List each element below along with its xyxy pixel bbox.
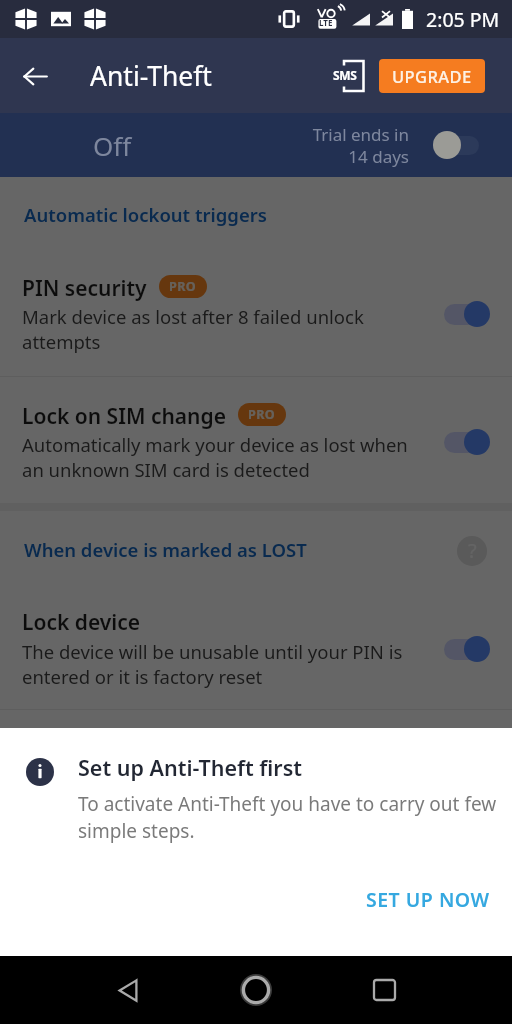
button[interactable]: PIN security: [0, 254, 512, 368]
staticText: PRO: [169, 278, 197, 295]
staticText: Lock on SIM change: [22, 402, 226, 431]
button[interactable]: SET UP NOW: [344, 875, 512, 924]
button[interactable]: Toggle: [444, 634, 490, 664]
button[interactable]: Lock on SIM change: [0, 382, 512, 496]
button[interactable]: Home: [232, 966, 280, 1014]
button[interactable]: Toggle: [444, 299, 490, 329]
staticText: Set up Anti-Theft first: [78, 753, 303, 782]
staticText: Anti-Theft: [90, 58, 212, 94]
staticText: Off: [93, 128, 132, 163]
button[interactable]: Toggle: [444, 427, 490, 457]
button[interactable]: SMS: [327, 53, 373, 99]
staticText: LTE: [319, 17, 333, 28]
staticText: To activate Anti-Theft you have to carry…: [78, 791, 502, 844]
button[interactable]: Lock device: [0, 588, 512, 703]
button[interactable]: Help: [457, 536, 487, 566]
staticText: Automatic lockout triggers: [24, 202, 267, 227]
button[interactable]: Enable Anti-Theft: [433, 130, 479, 160]
staticText: PIN security: [22, 274, 147, 303]
staticText: Lock device: [22, 608, 141, 637]
staticText: 2:05 PM: [426, 6, 500, 33]
staticText: Trial ends in 14 days: [312, 123, 409, 168]
staticText: Automatically mark your device as lost w…: [22, 432, 418, 482]
staticText: ?: [468, 537, 477, 564]
staticText: SET UP NOW: [366, 886, 490, 913]
button[interactable]: Recents: [360, 966, 408, 1014]
button[interactable]: Back: [104, 966, 152, 1014]
staticText: SMS: [333, 67, 357, 83]
staticText: PRO: [248, 406, 276, 423]
button[interactable]: Back: [12, 53, 58, 99]
staticText: The device will be unusable until your P…: [22, 639, 418, 689]
staticText: UPGRADE: [392, 65, 472, 87]
staticText: Mark device as lost after 8 failed unloc…: [22, 304, 418, 354]
button[interactable]: UPGRADE: [379, 59, 485, 93]
staticText: When device is marked as LOST: [24, 537, 307, 562]
